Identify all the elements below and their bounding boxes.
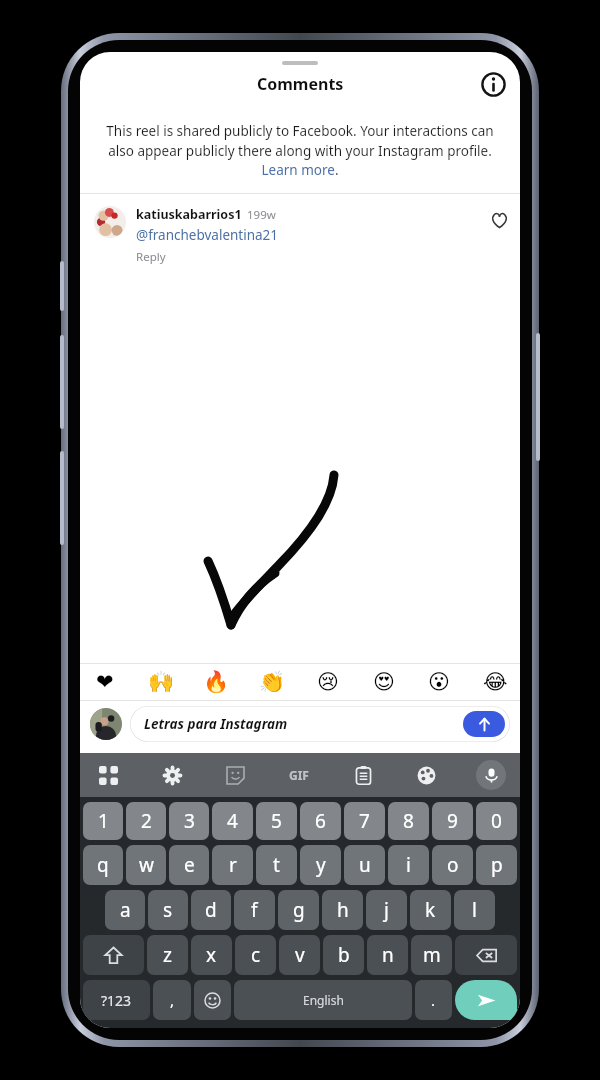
button[interactable]: 5 bbox=[256, 802, 297, 840]
staticText: 👏 bbox=[259, 670, 286, 695]
button[interactable]: 2 bbox=[126, 802, 166, 840]
staticText: katiuskabarrios1 bbox=[136, 206, 242, 223]
button[interactable]: y bbox=[300, 845, 341, 885]
button[interactable]: 4 bbox=[212, 802, 253, 840]
button[interactable]: s bbox=[148, 890, 188, 930]
staticText: p bbox=[491, 852, 503, 878]
button[interactable]: 8 bbox=[388, 802, 429, 840]
staticText: u bbox=[359, 852, 371, 878]
staticText: 😮 bbox=[428, 670, 450, 694]
button[interactable]: . bbox=[415, 980, 452, 1020]
button[interactable]: r bbox=[212, 845, 253, 885]
staticText: c bbox=[251, 942, 261, 968]
staticText: 6 bbox=[315, 808, 326, 834]
staticText: English bbox=[303, 992, 344, 1008]
button[interactable]: Backspace bbox=[455, 935, 517, 975]
staticText: m bbox=[423, 942, 441, 968]
staticText: f bbox=[251, 897, 258, 923]
staticText: 2 bbox=[141, 808, 152, 834]
button[interactable]: 9 bbox=[432, 802, 473, 840]
button[interactable]: 🙌 bbox=[144, 665, 178, 699]
button[interactable]: d bbox=[191, 890, 231, 930]
button[interactable]: Information bbox=[481, 72, 506, 97]
button[interactable]: Post comment bbox=[463, 711, 505, 737]
button[interactable]: 😮 bbox=[422, 665, 456, 699]
button[interactable]: Letras para Instagram bbox=[130, 706, 510, 742]
button[interactable]: 😢 bbox=[311, 665, 345, 699]
staticText: n bbox=[382, 942, 394, 968]
button[interactable]: 0 bbox=[476, 802, 517, 840]
staticText: Reply bbox=[136, 249, 166, 265]
button[interactable]: Send bbox=[455, 980, 517, 1020]
staticText: 😍 bbox=[373, 670, 395, 694]
staticText: o bbox=[447, 852, 459, 878]
button[interactable]: Emoji bbox=[194, 980, 231, 1020]
button[interactable]: Clipboard bbox=[349, 761, 377, 789]
button[interactable]: GIF bbox=[285, 761, 313, 789]
staticText: v bbox=[295, 942, 305, 968]
staticText: x bbox=[206, 942, 217, 968]
staticText: 1 bbox=[98, 808, 109, 834]
button[interactable]: Settings bbox=[158, 761, 186, 789]
button[interactable]: 🔥 bbox=[199, 665, 233, 699]
staticText: 😂 bbox=[483, 670, 508, 694]
button[interactable]: a bbox=[105, 890, 145, 930]
staticText: e bbox=[184, 852, 195, 878]
button[interactable]: i bbox=[388, 845, 429, 885]
button[interactable]: ❤️ bbox=[88, 665, 122, 699]
button[interactable]: q bbox=[83, 845, 123, 885]
button[interactable]: 6 bbox=[300, 802, 341, 840]
button[interactable]: n bbox=[367, 935, 408, 975]
button[interactable]: g bbox=[278, 890, 319, 930]
button[interactable]: w bbox=[126, 845, 166, 885]
staticText: Letras para Instagram bbox=[144, 715, 288, 733]
staticText: g bbox=[293, 897, 305, 923]
button[interactable]: x bbox=[191, 935, 232, 975]
button[interactable]: ?123 bbox=[83, 980, 150, 1020]
button[interactable]: 👏 bbox=[255, 665, 289, 699]
button[interactable]: Voice input bbox=[476, 760, 506, 790]
button[interactable]: Like comment bbox=[491, 212, 508, 229]
button[interactable]: t bbox=[256, 845, 297, 885]
button[interactable]: 3 bbox=[169, 802, 209, 840]
staticText: ❤️ bbox=[96, 670, 114, 694]
button[interactable]: m bbox=[411, 935, 452, 975]
staticText: z bbox=[163, 942, 172, 968]
staticText: i bbox=[406, 852, 411, 878]
button[interactable]: Themes bbox=[412, 761, 440, 789]
staticText: 4 bbox=[227, 808, 238, 834]
staticText: d bbox=[205, 897, 217, 923]
button[interactable]: l bbox=[454, 890, 495, 930]
staticText: a bbox=[120, 897, 131, 923]
button[interactable]: p bbox=[476, 845, 517, 885]
button[interactable]: Stickers bbox=[221, 761, 249, 789]
button[interactable]: z bbox=[147, 935, 188, 975]
button[interactable]: f bbox=[234, 890, 275, 930]
button[interactable]: 😂 bbox=[478, 665, 512, 699]
button[interactable]: katiuskabarrios1 bbox=[94, 206, 508, 265]
button[interactable]: c bbox=[235, 935, 276, 975]
staticText: k bbox=[425, 897, 436, 923]
button[interactable]: j bbox=[366, 890, 407, 930]
button[interactable]: o bbox=[432, 845, 473, 885]
button[interactable]: 7 bbox=[344, 802, 385, 840]
staticText: 5 bbox=[271, 808, 282, 834]
button[interactable]: b bbox=[323, 935, 364, 975]
button[interactable]: e bbox=[169, 845, 209, 885]
staticText: 😢 bbox=[317, 670, 339, 694]
staticText: 199w bbox=[247, 207, 276, 223]
button[interactable]: Shift bbox=[83, 935, 144, 975]
staticText: w bbox=[139, 852, 154, 878]
button[interactable]: v bbox=[279, 935, 320, 975]
staticText: @franchebvalentina21 bbox=[136, 226, 279, 244]
button[interactable]: 1 bbox=[83, 802, 123, 840]
button[interactable]: k bbox=[410, 890, 451, 930]
staticText: r bbox=[229, 852, 237, 878]
button[interactable]: English bbox=[234, 980, 412, 1020]
button[interactable]: , bbox=[153, 980, 191, 1020]
button[interactable]: 😍 bbox=[367, 665, 401, 699]
button[interactable]: h bbox=[322, 890, 363, 930]
staticText: Comments bbox=[257, 73, 344, 95]
button[interactable]: u bbox=[344, 845, 385, 885]
button[interactable]: Keyboard layouts bbox=[94, 761, 122, 789]
